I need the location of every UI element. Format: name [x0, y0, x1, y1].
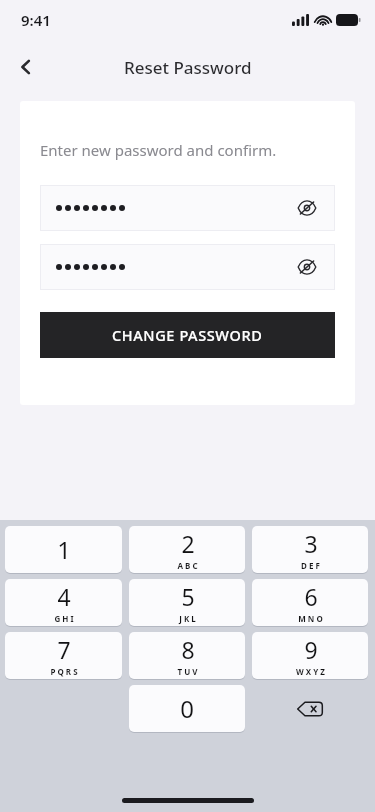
staticText: G H I [54, 613, 74, 624]
staticText: 4 [57, 581, 71, 612]
staticText: 3 [304, 528, 318, 559]
staticText: 6 [304, 581, 318, 612]
staticText: W X Y Z [296, 666, 325, 677]
button[interactable]: 6 [252, 579, 368, 626]
button[interactable]: 0 [129, 685, 245, 732]
button[interactable]: CHANGE PASSWORD [40, 312, 335, 358]
button[interactable]: 9 [252, 632, 368, 679]
staticText: Enter new password and confirm. [40, 140, 277, 160]
staticText: J K L [179, 613, 196, 624]
staticText: 1 [57, 533, 71, 566]
button[interactable]: 5 [129, 579, 245, 626]
staticText: D E F [301, 560, 320, 571]
staticText: 8 [181, 634, 195, 665]
button[interactable]: Show password [40, 244, 335, 290]
button[interactable]: 7 [5, 632, 122, 679]
button[interactable]: Back [8, 49, 44, 85]
staticText: 5 [181, 581, 195, 612]
button[interactable]: Show password [40, 185, 335, 231]
staticText: 0 [180, 692, 194, 725]
staticText: A B C [177, 560, 198, 571]
staticText: CHANGE PASSWORD [112, 325, 263, 345]
button[interactable]: 1 [5, 526, 122, 573]
button[interactable]: 4 [5, 579, 122, 626]
button[interactable]: Show password [293, 194, 321, 222]
staticText: P Q R S [50, 666, 78, 677]
staticText: T U V [177, 666, 198, 677]
button[interactable]: 2 [129, 526, 245, 573]
staticText: 7 [57, 634, 71, 665]
staticText: M N O [298, 613, 323, 624]
staticText: 9:41 [21, 10, 51, 30]
button[interactable]: Backspace [252, 685, 368, 732]
button[interactable]: Show password [293, 253, 321, 281]
button[interactable]: 8 [129, 632, 245, 679]
button[interactable]: 3 [252, 526, 368, 573]
staticText: Reset Password [124, 56, 252, 79]
staticText: 9 [304, 634, 318, 665]
staticText: 2 [181, 528, 195, 559]
